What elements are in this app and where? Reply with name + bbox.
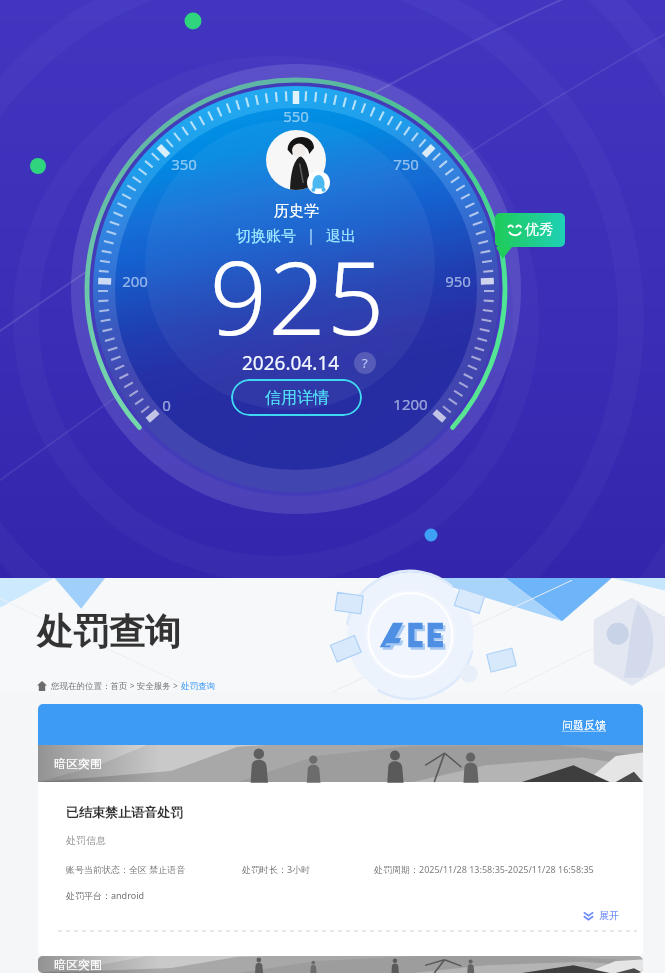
staticText: 处罚信息 [66,834,106,847]
staticText: 处罚平台：android [66,889,144,901]
staticText: 550 [283,106,309,126]
staticText: 问题反馈 [562,718,606,732]
staticText: 1200 [393,394,428,414]
staticText: 处罚查询 [37,609,181,654]
staticText: 已结束禁止语音处罚 [66,804,183,820]
staticText: 处罚时长：3小时 [242,863,374,875]
button[interactable]: 优秀 [495,213,565,247]
staticText: 暗区突围 [54,756,102,771]
staticText: 退出 [326,227,356,246]
button[interactable]: Profile avatar [266,130,326,190]
staticText: 2026.04.14 [242,350,340,376]
button[interactable]: 问题反馈 [38,704,643,745]
staticText: 950 [445,271,471,291]
staticText: 展开 [599,909,619,922]
button[interactable]: 展开 [578,905,623,926]
staticText: 0 [162,395,171,415]
button[interactable]: Help [354,352,376,374]
staticText: 处罚查询 [181,681,215,692]
staticText: 历史学 [274,202,319,221]
staticText: 处罚周期：2025/11/28 13:58:35-2025/11/28 16:5… [374,863,594,875]
button[interactable]: 信用详情 [231,379,362,416]
staticText: 切换账号 [236,227,296,246]
staticText: ? [362,354,368,372]
staticText: 优秀 [525,221,553,239]
button[interactable]: 切换账号 [234,227,298,246]
staticText: 信用详情 [265,388,329,408]
button[interactable]: 处罚查询 [181,681,215,692]
staticText: 暗区突围 [54,957,102,972]
staticText: 账号当前状态：全区 禁止语音 [66,863,242,875]
button[interactable]: 退出 [324,227,358,246]
staticText: 200 [122,271,148,291]
staticText: 750 [393,154,419,174]
staticText: 您现在的位置：首页 > 安全服务 > [51,680,181,692]
staticText: 350 [171,154,197,174]
staticText: 925 [209,227,386,347]
